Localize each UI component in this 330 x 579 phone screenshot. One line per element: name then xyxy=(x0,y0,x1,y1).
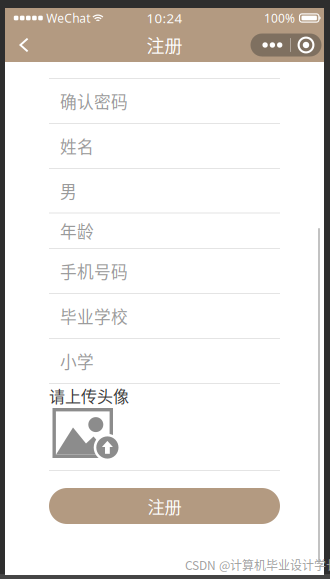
button[interactable]: 手机号码 xyxy=(49,249,280,294)
button[interactable]: 年龄 xyxy=(49,213,280,249)
staticText: 确认密码 xyxy=(60,89,128,113)
staticText: 手机号码 xyxy=(60,259,128,283)
staticText: 注册 xyxy=(146,32,182,58)
button[interactable]: 男 xyxy=(49,169,280,213)
button[interactable]: 小学 xyxy=(49,339,280,384)
button[interactable]: 毕业学校 xyxy=(49,294,280,339)
staticText: 注册 xyxy=(147,493,181,519)
button[interactable]: More options xyxy=(250,33,321,56)
button[interactable]: 姓名 xyxy=(49,124,280,169)
staticText: CSDN @计算机毕业设计学长小刘 xyxy=(185,556,330,573)
staticText: WeChat xyxy=(46,10,90,26)
staticText: 年龄 xyxy=(60,219,94,243)
staticText: 100% xyxy=(264,10,295,26)
staticText: 姓名 xyxy=(60,134,94,158)
button[interactable]: Upload avatar xyxy=(52,408,125,460)
staticText: 请上传头像 xyxy=(49,384,129,407)
button[interactable]: 确认密码 xyxy=(49,79,280,124)
staticText: 小学 xyxy=(60,349,94,373)
staticText: 毕业学校 xyxy=(60,304,128,328)
button[interactable]: 注册 xyxy=(49,488,280,524)
staticText: 10:24 xyxy=(146,9,182,27)
button[interactable]: Back xyxy=(9,28,39,62)
staticText: 男 xyxy=(60,179,77,203)
